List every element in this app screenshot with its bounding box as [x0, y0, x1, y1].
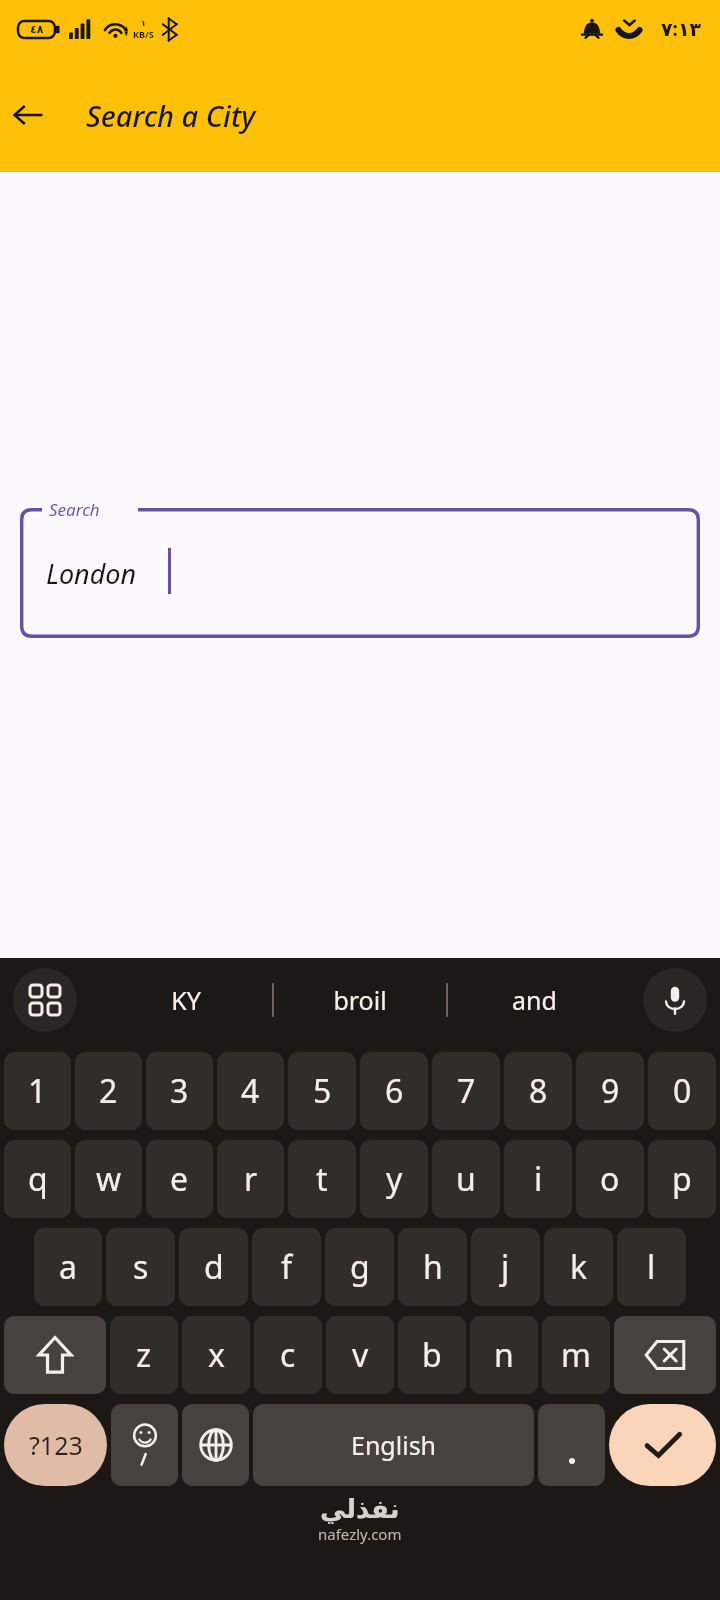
button[interactable]: g: [325, 1228, 394, 1306]
button[interactable]: Emoji: [111, 1404, 178, 1486]
button[interactable]: 6: [360, 1052, 428, 1130]
button[interactable]: Voice input: [643, 968, 707, 1032]
button[interactable]: Change language: [182, 1404, 249, 1486]
staticText: Search: [49, 498, 100, 521]
staticText: 1: [28, 1069, 47, 1113]
staticText: c: [280, 1333, 296, 1377]
staticText: w: [96, 1157, 122, 1201]
button[interactable]: n: [470, 1316, 538, 1394]
staticText: y: [386, 1157, 403, 1201]
button[interactable]: o: [576, 1140, 644, 1218]
staticText: p: [672, 1157, 692, 1201]
button[interactable]: Shift: [4, 1316, 106, 1394]
button[interactable]: u: [432, 1140, 500, 1218]
button[interactable]: 0: [648, 1052, 716, 1130]
button[interactable]: t: [288, 1140, 356, 1218]
staticText: ?123: [29, 1428, 83, 1462]
button[interactable]: 1: [4, 1052, 71, 1130]
staticText: KY: [171, 983, 201, 1017]
button[interactable]: s: [106, 1228, 175, 1306]
staticText: n: [494, 1333, 514, 1377]
staticText: 3: [170, 1069, 189, 1113]
button[interactable]: broil: [274, 958, 446, 1042]
staticText: u: [456, 1157, 476, 1201]
button[interactable]: e: [146, 1140, 213, 1218]
staticText: ٤٨: [30, 23, 44, 36]
button[interactable]: r: [217, 1140, 284, 1218]
staticText: broil: [333, 983, 387, 1017]
staticText: 0: [673, 1069, 692, 1113]
button[interactable]: y: [360, 1140, 428, 1218]
staticText: d: [204, 1245, 224, 1289]
staticText: i: [534, 1157, 543, 1201]
staticText: o: [600, 1157, 620, 1201]
staticText: Search a City: [86, 96, 256, 135]
button[interactable]: m: [542, 1316, 610, 1394]
staticText: 4: [241, 1069, 260, 1113]
staticText: b: [422, 1333, 442, 1377]
staticText: 7: [457, 1069, 476, 1113]
staticText: f: [281, 1245, 293, 1289]
staticText: z: [136, 1333, 152, 1377]
button[interactable]: 7: [432, 1052, 500, 1130]
button[interactable]: Enter: [609, 1404, 716, 1486]
button[interactable]: 5: [288, 1052, 356, 1130]
staticText: t: [316, 1157, 328, 1201]
staticText: 6: [385, 1069, 404, 1113]
button[interactable]: 9: [576, 1052, 644, 1130]
staticText: m: [561, 1333, 591, 1377]
button[interactable]: 8: [504, 1052, 572, 1130]
button[interactable]: b: [398, 1316, 466, 1394]
button[interactable]: English: [253, 1404, 534, 1486]
button[interactable]: Back: [0, 87, 56, 143]
staticText: London: [46, 555, 137, 592]
staticText: 5: [313, 1069, 332, 1113]
staticText: and: [512, 983, 557, 1017]
button[interactable]: j: [471, 1228, 540, 1306]
staticText: 2: [99, 1069, 118, 1113]
button[interactable]: h: [398, 1228, 467, 1306]
staticText: l: [647, 1245, 656, 1289]
button[interactable]: c: [254, 1316, 322, 1394]
button[interactable]: KY: [100, 958, 272, 1042]
button[interactable]: x: [182, 1316, 250, 1394]
staticText: ١: [141, 19, 146, 28]
button[interactable]: 3: [146, 1052, 213, 1130]
staticText: 9: [601, 1069, 620, 1113]
button[interactable]: f: [252, 1228, 321, 1306]
button[interactable]: [538, 1404, 605, 1486]
button[interactable]: q: [4, 1140, 71, 1218]
staticText: j: [501, 1245, 510, 1289]
button[interactable]: and: [448, 958, 620, 1042]
button[interactable]: l: [617, 1228, 686, 1306]
button[interactable]: 4: [217, 1052, 284, 1130]
button[interactable]: z: [110, 1316, 178, 1394]
button[interactable]: k: [544, 1228, 613, 1306]
staticText: h: [423, 1245, 443, 1289]
button[interactable]: i: [504, 1140, 572, 1218]
button[interactable]: a: [34, 1228, 102, 1306]
staticText: q: [28, 1157, 48, 1201]
staticText: 8: [529, 1069, 548, 1113]
button[interactable]: ?123: [4, 1404, 107, 1486]
button[interactable]: w: [75, 1140, 142, 1218]
button[interactable]: d: [179, 1228, 248, 1306]
button[interactable]: 2: [75, 1052, 142, 1130]
button[interactable]: p: [648, 1140, 716, 1218]
staticText: s: [133, 1245, 149, 1289]
button[interactable]: Backspace: [614, 1316, 716, 1394]
staticText: KB/S: [133, 28, 154, 40]
staticText: نفذلي: [320, 1494, 400, 1524]
button[interactable]: Keyboard modes: [13, 968, 77, 1032]
staticText: r: [244, 1157, 258, 1201]
staticText: nafezly.com: [318, 1524, 402, 1544]
staticText: ٧:١٣: [661, 16, 702, 42]
staticText: x: [208, 1333, 225, 1377]
staticText: k: [570, 1245, 588, 1289]
button[interactable]: v: [326, 1316, 394, 1394]
button[interactable]: London: [20, 508, 700, 638]
staticText: e: [170, 1157, 189, 1201]
staticText: v: [352, 1333, 369, 1377]
staticText: a: [59, 1245, 77, 1289]
staticText: English: [351, 1428, 437, 1462]
